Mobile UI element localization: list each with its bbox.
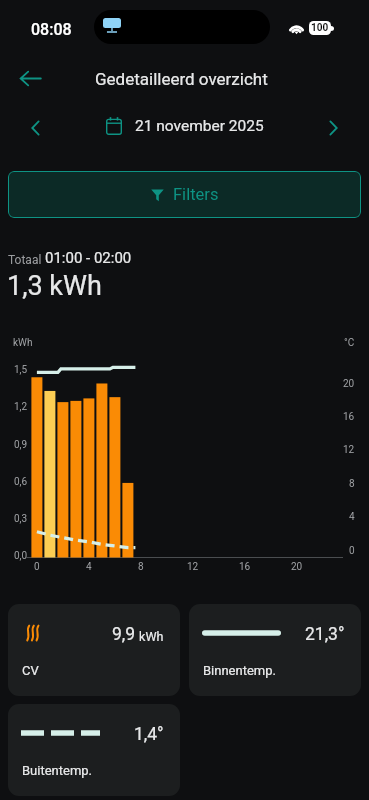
staticText: 9,9 <box>112 624 136 645</box>
staticText: 1,3 kWh <box>7 270 102 302</box>
staticText: Binnentemp. <box>203 663 276 678</box>
staticText: Totaal <box>8 253 45 267</box>
staticText: CV <box>22 663 39 678</box>
staticText: 4 <box>86 561 92 573</box>
staticText: 1,2 <box>14 401 28 413</box>
staticText: 12 <box>343 444 355 456</box>
button[interactable]: Vorige dag <box>16 108 56 148</box>
staticText: 12 <box>187 561 199 573</box>
staticText: 1,5 <box>14 364 28 376</box>
staticText: 0 <box>349 545 355 557</box>
staticText: 4 <box>349 511 355 523</box>
staticText: Buitentemp. <box>22 763 93 778</box>
staticText: 20 <box>343 378 355 390</box>
staticText: Gedetailleerd overzicht <box>95 69 268 89</box>
button[interactable]: 21,3° <box>189 604 361 696</box>
button[interactable]: Volgende dag <box>313 108 353 148</box>
staticText: 0 <box>34 561 40 573</box>
staticText: 100 <box>311 22 329 34</box>
staticText: 8 <box>138 561 144 573</box>
staticText: kWh <box>136 629 164 644</box>
staticText: 0,3 <box>14 513 28 525</box>
button[interactable]: Filters <box>8 171 361 218</box>
staticText: 0,0 <box>14 550 28 562</box>
staticText: °C <box>344 337 355 349</box>
staticText: Filters <box>173 185 219 204</box>
button[interactable]: Terug <box>10 58 50 98</box>
staticText: 0,9 <box>14 439 28 451</box>
staticText: 16 <box>239 561 251 573</box>
button[interactable]: 1,4° <box>8 704 180 796</box>
staticText: 1,4° <box>134 724 164 745</box>
staticText: 08:08 <box>31 20 72 39</box>
staticText: 21 november 2025 <box>135 117 264 135</box>
button[interactable]: 9,9 <box>8 604 180 696</box>
staticText: 21,3° <box>305 624 345 645</box>
staticText: 8 <box>349 478 355 490</box>
staticText: 16 <box>343 411 355 423</box>
staticText: 0,6 <box>14 476 28 488</box>
staticText: 01:00 - 02:00 <box>45 249 132 267</box>
staticText: 20 <box>291 561 303 573</box>
staticText: kWh <box>13 337 33 349</box>
